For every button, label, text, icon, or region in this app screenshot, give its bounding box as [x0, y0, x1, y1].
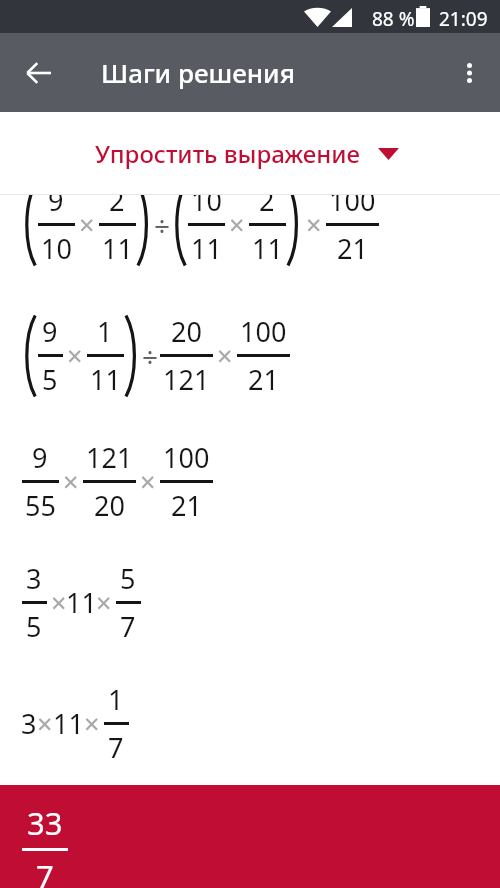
staticText: 21 [248, 361, 279, 398]
staticText: × [51, 584, 67, 621]
button[interactable]: 3 [0, 542, 500, 663]
staticText: 7 [108, 729, 124, 766]
staticText: 11 [66, 584, 97, 621]
staticText: 3 [26, 560, 42, 597]
staticText: 21 [171, 487, 202, 524]
staticText: 2 [109, 195, 125, 219]
staticText: × [217, 337, 233, 374]
button[interactable]: Упростить выражение [0, 112, 500, 194]
staticText: 21:09 [439, 6, 488, 32]
staticText: 33 [27, 802, 63, 844]
staticText: 11 [191, 230, 222, 267]
button[interactable]: 3 [0, 663, 500, 784]
staticText: 2 [259, 195, 275, 219]
button[interactable]: 9 [0, 421, 500, 542]
staticText: × [140, 463, 156, 500]
staticText: 5 [120, 560, 136, 597]
staticText: 9 [42, 313, 58, 350]
button[interactable]: 9 [0, 290, 500, 421]
button[interactable]: 9 [0, 195, 500, 290]
staticText: 10 [41, 230, 72, 267]
button[interactable]: Back [14, 49, 62, 97]
staticText: ÷ [142, 337, 159, 375]
staticText: 1 [97, 313, 113, 350]
staticText: × [37, 705, 53, 742]
staticText: 11 [102, 230, 133, 267]
staticText: 5 [26, 608, 42, 645]
staticText: × [84, 705, 100, 742]
staticText: 55 [25, 487, 56, 524]
staticText: 100 [163, 439, 210, 476]
staticText: × [79, 206, 95, 243]
staticText: 21 [337, 230, 368, 267]
staticText: 3 [21, 705, 37, 742]
staticText: 20 [171, 313, 202, 350]
staticText: 9 [48, 195, 64, 219]
button[interactable]: More options [445, 49, 493, 97]
staticText: × [63, 463, 79, 500]
staticText: 88 % [372, 6, 415, 32]
staticText: 5 [42, 361, 58, 398]
staticText: Упростить выражение [95, 137, 361, 170]
staticText: 7 [120, 608, 136, 645]
staticText: 11 [252, 230, 283, 267]
staticText: 11 [53, 705, 84, 742]
staticText: 1 [108, 681, 124, 718]
staticText: 121 [163, 361, 210, 398]
staticText: × [67, 337, 83, 374]
staticText: 7 [36, 855, 54, 888]
staticText: 10 [191, 195, 222, 219]
staticText: 121 [86, 439, 133, 476]
staticText: 9 [32, 439, 48, 476]
staticText: 20 [94, 487, 125, 524]
staticText: 11 [90, 361, 121, 398]
staticText: × [306, 206, 322, 243]
staticText: ÷ [154, 206, 171, 244]
staticText: 100 [329, 195, 376, 219]
staticText: × [229, 206, 245, 243]
staticText: 100 [240, 313, 287, 350]
staticText: Шаги решения [101, 55, 295, 90]
staticText: × [96, 584, 112, 621]
